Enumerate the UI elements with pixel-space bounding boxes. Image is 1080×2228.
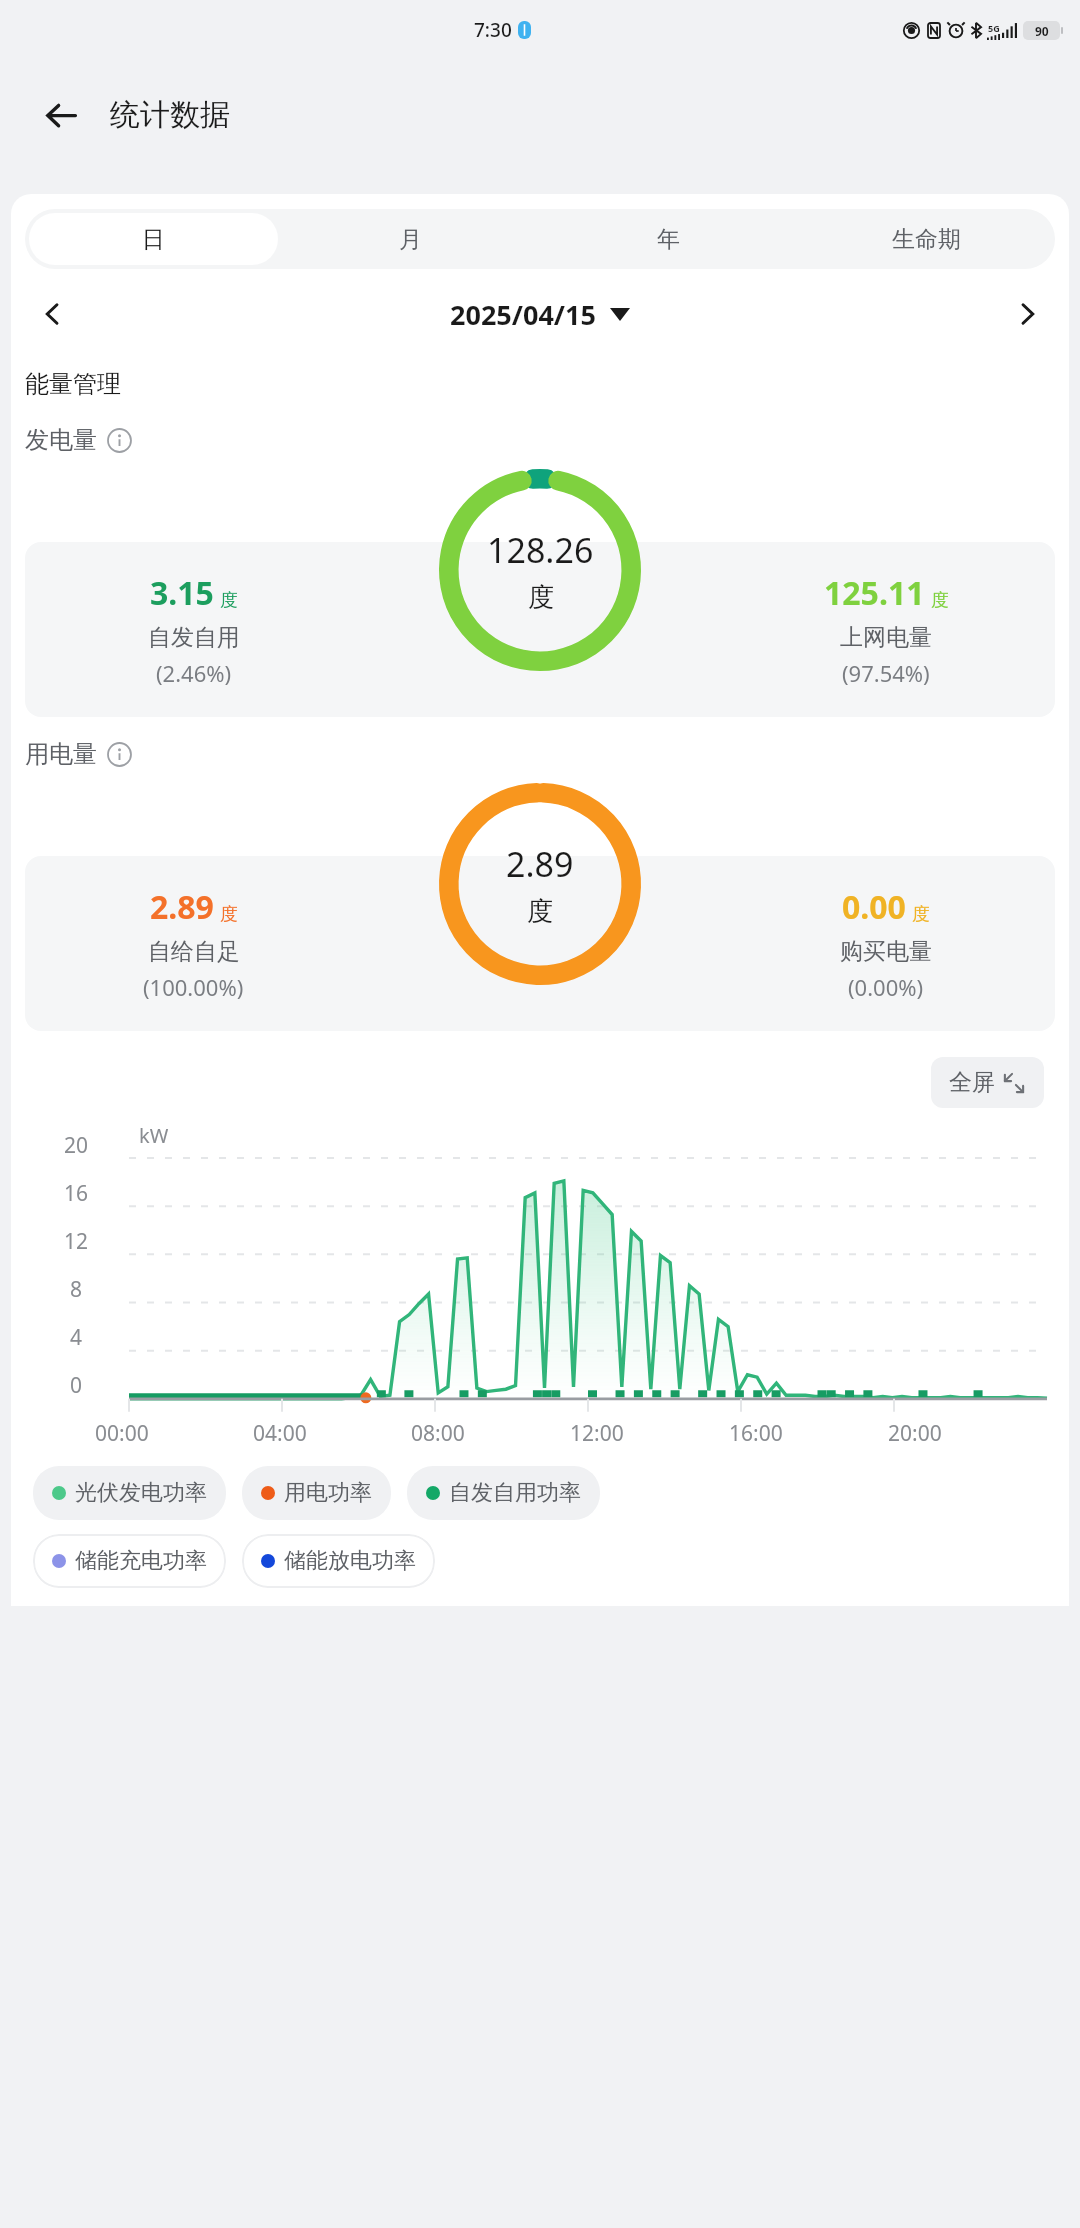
staticText: 2.89 [150,885,214,929]
staticText: (2.46%) [156,658,232,688]
button[interactable]: 用电功率 [242,1466,391,1520]
staticText: 12 [63,1227,88,1256]
button[interactable]: Next day [999,286,1055,342]
button[interactable]: 2025/04/15 [450,296,630,333]
staticText: 3.15 [150,571,214,615]
staticText: 度 [220,903,238,926]
staticText: 12:00 [570,1419,624,1448]
staticText: 度 [220,589,238,612]
staticText: 度 [528,581,554,614]
staticText: 20:00 [888,1419,942,1448]
staticText: 度 [931,589,949,612]
staticText: 4 [69,1323,82,1352]
staticText: kW [139,1122,169,1149]
staticText: 00:00 [95,1419,149,1448]
staticText: 上网电量 [840,623,932,652]
staticText: 0.00 [842,885,906,929]
staticText: 04:00 [253,1419,307,1448]
staticText: 16:00 [729,1419,783,1448]
staticText: 7:30 [474,17,512,43]
staticText: 2025/04/15 [450,296,596,333]
staticText: 自发自用功率 [449,1479,581,1507]
staticText: 用电功率 [284,1479,372,1507]
button[interactable]: 日 [29,213,278,265]
button[interactable]: 用电量 [25,739,132,769]
button[interactable]: 储能充电功率 [33,1534,226,1588]
staticText: 8 [69,1275,82,1304]
staticText: 年 [657,225,680,254]
staticText: 月 [399,225,422,254]
staticText: (0.00%) [848,972,924,1002]
staticText: 16 [63,1179,88,1208]
staticText: 5G [988,22,1000,34]
staticText: 自给自足 [148,937,240,966]
button[interactable]: 全屏 [931,1057,1044,1108]
staticText: 20 [63,1131,88,1160]
button[interactable]: 发电量 [25,425,132,455]
staticText: 128.26 [487,527,594,573]
staticText: 能量管理 [25,369,121,399]
staticText: 储能充电功率 [75,1547,207,1575]
staticText: 全屏 [949,1068,995,1097]
button[interactable]: 生命期 [801,213,1051,265]
button[interactable]: Previous day [25,286,81,342]
button[interactable]: 月 [286,213,535,265]
staticText: 2.89 [506,841,574,887]
staticText: 发电量 [25,425,97,455]
staticText: 90 [1035,23,1049,39]
button[interactable]: 储能放电功率 [242,1534,435,1588]
staticText: 购买电量 [840,937,932,966]
staticText: 储能放电功率 [284,1547,416,1575]
staticText: 光伏发电功率 [75,1479,207,1507]
staticText: (97.54%) [842,658,930,688]
staticText: 统计数据 [110,96,230,134]
staticText: 日 [142,225,165,254]
staticText: (100.00%) [143,972,244,1002]
staticText: 度 [912,903,930,926]
staticText: 0 [69,1371,82,1400]
staticText: 度 [527,895,553,928]
button[interactable]: Back [34,88,88,142]
staticText: 自发自用 [148,623,240,652]
staticText: 08:00 [411,1419,465,1448]
staticText: 125.11 [824,571,925,615]
button[interactable]: 年 [543,213,793,265]
button[interactable]: 光伏发电功率 [33,1466,226,1520]
button[interactable]: 自发自用功率 [407,1466,600,1520]
staticText: 生命期 [892,225,961,254]
staticText: 用电量 [25,739,97,769]
